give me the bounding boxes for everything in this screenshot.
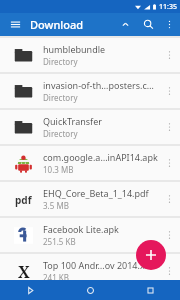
- button[interactable]: More options for Top 100 Andr…ov 2014.xl…: [158, 254, 180, 288]
- staticText: Download: [30, 17, 114, 32]
- button[interactable]: More options for com.google.a…inAPI14.ap…: [158, 146, 180, 180]
- staticText: invasion-of-th…posters.com: [43, 79, 158, 91]
- staticText: Top 100 Andr…ov 2014.xlsx: [43, 259, 157, 271]
- staticText: 3.5 MB: [43, 200, 69, 211]
- button[interactable]: invasion-of-th…posters.com: [0, 74, 180, 108]
- button[interactable]: More options for humblebundle: [158, 38, 180, 72]
- button[interactable]: Navigation menu: [0, 13, 30, 36]
- button[interactable]: Search: [136, 13, 160, 36]
- staticText: QuickTransfer: [43, 115, 102, 127]
- button[interactable]: More options for invasion-of-th…posters.…: [158, 74, 180, 108]
- staticText: humblebundle: [43, 43, 106, 55]
- button[interactable]: humblebundle: [0, 38, 180, 72]
- staticText: 10.3 MB: [43, 164, 74, 175]
- staticText: pdf: [15, 193, 32, 207]
- button[interactable]: Add: [136, 240, 166, 270]
- button[interactable]: Home: [60, 280, 120, 300]
- staticText: Facebook Lite.apk: [43, 223, 119, 235]
- staticText: Directory: [43, 92, 78, 103]
- staticText: X: [18, 261, 30, 282]
- staticText: Directory: [43, 128, 78, 139]
- staticText: 251.5 KB: [43, 236, 76, 247]
- staticText: com.google.a…inAPI14.apk: [43, 151, 158, 163]
- staticText: 241 KB: [43, 272, 69, 283]
- button[interactable]: Collapse: [114, 13, 136, 36]
- button[interactable]: More options: [160, 13, 178, 36]
- button[interactable]: Recent apps: [120, 280, 180, 300]
- staticText: 11:35: [159, 2, 177, 12]
- button[interactable]: com.google.a…inAPI14.apk: [0, 146, 180, 180]
- button[interactable]: Facebook Lite.apk: [0, 218, 180, 252]
- button[interactable]: More options for EHQ_Core_Beta_1_14.pdf: [158, 182, 180, 216]
- button[interactable]: X: [0, 254, 180, 288]
- staticText: Directory: [43, 56, 78, 67]
- staticText: EHQ_Core_Beta_1_14.pdf: [43, 187, 149, 199]
- button[interactable]: pdf: [0, 182, 180, 216]
- button[interactable]: Back: [0, 280, 60, 300]
- button[interactable]: QuickTransfer: [0, 110, 180, 144]
- button[interactable]: More options for Facebook Lite.apk: [158, 218, 180, 252]
- button[interactable]: More options for QuickTransfer: [158, 110, 180, 144]
